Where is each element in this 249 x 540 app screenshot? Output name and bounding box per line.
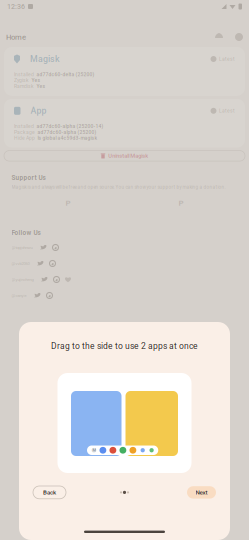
button[interactable]: GitHub <box>49 260 55 266</box>
button[interactable]: Twitter <box>37 261 44 266</box>
staticText: @topjohnwu <box>11 245 32 250</box>
button[interactable]: Patreon <box>61 198 75 208</box>
staticText: Yes <box>31 77 40 83</box>
staticText: ad77dc60-alpha (25200) <box>37 129 96 135</box>
button[interactable]: Settings <box>235 33 243 41</box>
button[interactable]: GitHub <box>52 244 58 250</box>
staticText: Installed <box>14 72 34 78</box>
staticText: Home <box>6 32 26 42</box>
button[interactable]: Magisk <box>4 47 245 96</box>
button[interactable]: Next <box>187 486 216 499</box>
staticText: Is global a4c59d3-magisk <box>37 135 97 141</box>
staticText: @vvb2060 <box>11 261 29 266</box>
staticText: Back <box>43 489 56 496</box>
staticText: Hide App <box>14 135 35 141</box>
button[interactable]: GitHub <box>46 292 52 298</box>
staticText: App <box>30 106 46 116</box>
staticText: Magisk <box>30 54 60 64</box>
staticText: Magisk is and always will be free and op… <box>11 185 225 190</box>
staticText: Installed <box>14 123 34 129</box>
staticText: P <box>65 198 70 208</box>
staticText: Latest <box>219 56 235 62</box>
staticText: @yujincheng <box>11 277 33 282</box>
button[interactable]: Sponsor <box>65 277 71 282</box>
staticText: Zygisk <box>14 77 29 83</box>
staticText: Drag to the side to use 2 apps at once <box>51 341 198 351</box>
staticText: P <box>178 198 183 208</box>
staticText: Uninstall Magisk <box>108 153 148 159</box>
staticText: Yes <box>36 83 45 89</box>
staticText: Package <box>14 129 35 135</box>
staticText: ad77dc60-delta (25200) <box>36 72 94 78</box>
button[interactable]: Twitter <box>40 245 47 250</box>
button[interactable]: Back <box>33 486 66 499</box>
staticText: M <box>92 448 95 453</box>
button[interactable]: Notifications <box>215 33 223 41</box>
button[interactable]: PayPal <box>174 198 188 208</box>
button[interactable]: Twitter <box>34 293 41 298</box>
staticText: Latest <box>219 108 235 114</box>
button[interactable]: GitHub <box>53 276 59 282</box>
staticText: Ramdisk <box>14 83 34 89</box>
staticText: Next <box>195 489 207 496</box>
button[interactable]: App <box>4 99 245 148</box>
staticText: 12:36 <box>7 2 25 11</box>
staticText: Follow Us <box>11 229 40 236</box>
button[interactable]: Twitter <box>41 277 48 282</box>
staticText: Support Us <box>11 174 45 182</box>
staticText: @canyie <box>11 293 26 298</box>
button[interactable]: Uninstall Magisk <box>4 151 245 161</box>
staticText: ad77dc60-alpha (25200-14) <box>36 123 103 129</box>
